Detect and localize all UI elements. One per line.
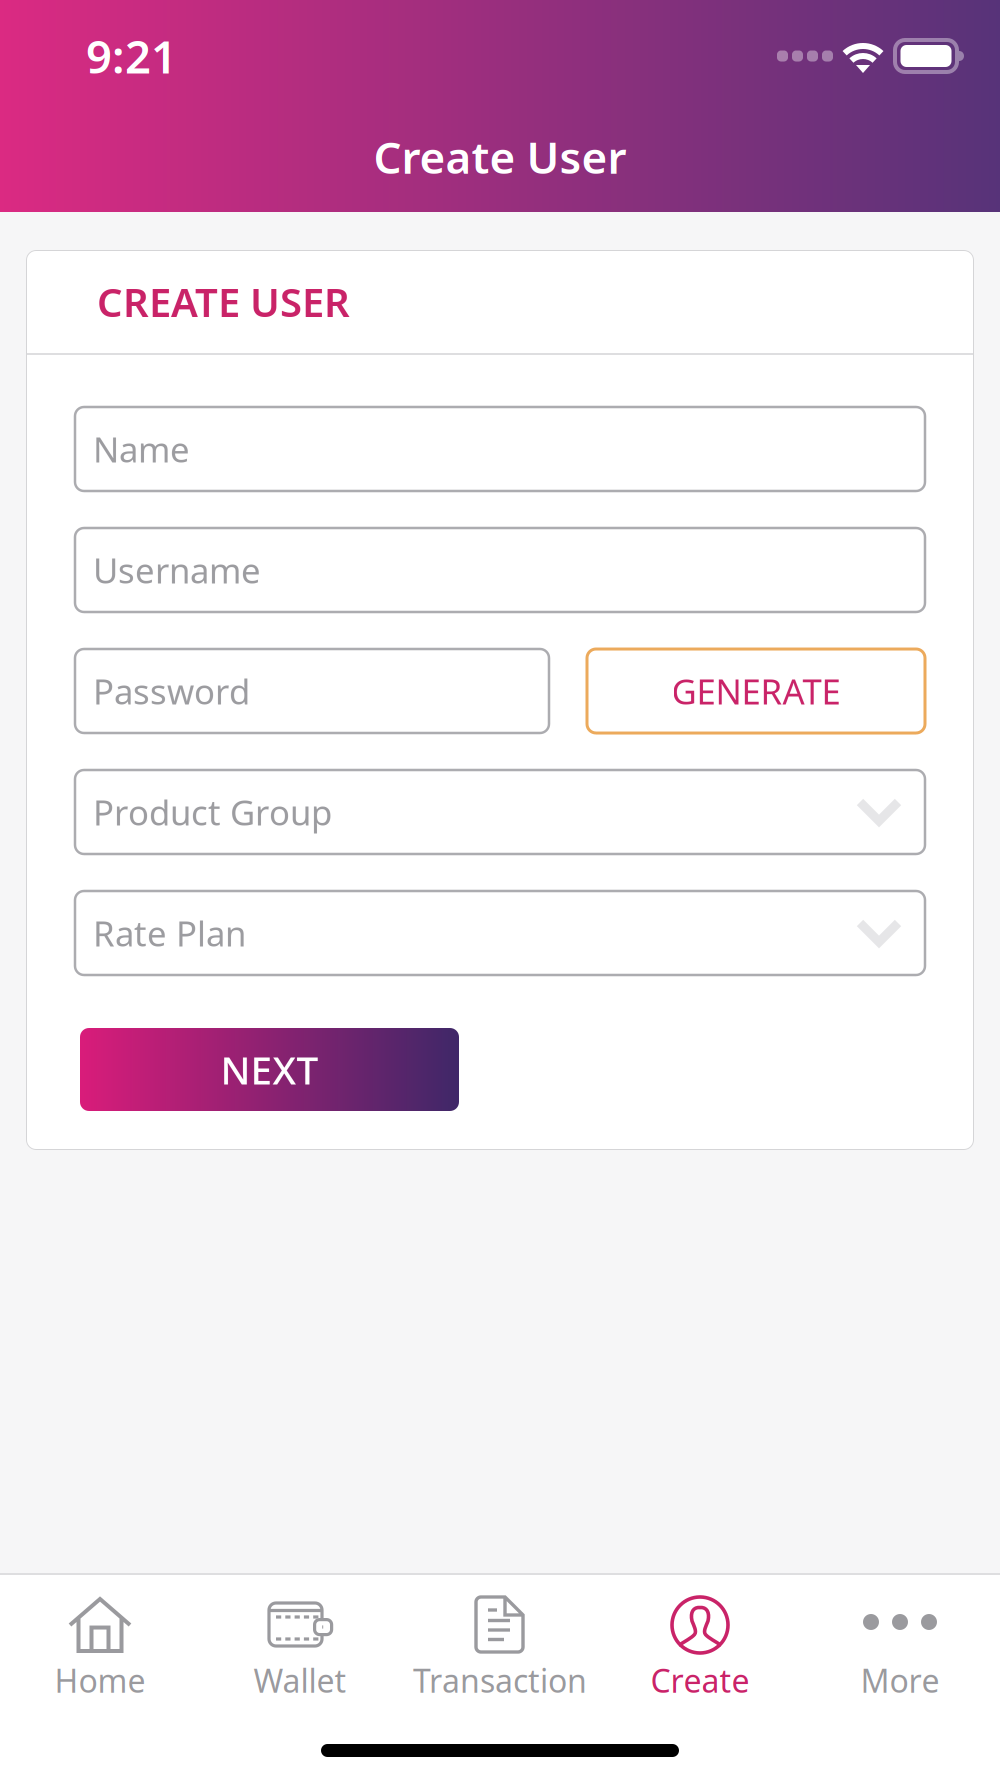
- button[interactable]: Name: [75, 407, 925, 491]
- button[interactable]: Rate Plan: [75, 891, 925, 975]
- staticText: Name: [93, 426, 190, 472]
- button[interactable]: Wallet: [200, 1596, 400, 1708]
- staticText: Transaction: [413, 1659, 587, 1701]
- staticText: Home: [54, 1659, 145, 1701]
- staticText: Username: [93, 547, 261, 593]
- button[interactable]: Password: [75, 649, 549, 733]
- button[interactable]: Product Group: [75, 770, 925, 854]
- staticText: CREATE USER: [97, 275, 350, 328]
- staticText: Rate Plan: [93, 910, 246, 956]
- staticText: 9:21: [86, 26, 177, 86]
- staticText: NEXT: [220, 1044, 318, 1095]
- staticText: Create: [650, 1659, 749, 1701]
- staticText: Product Group: [93, 789, 332, 835]
- button[interactable]: Transaction: [400, 1596, 600, 1708]
- button[interactable]: More: [800, 1596, 1000, 1708]
- button[interactable]: GENERATE: [587, 649, 925, 733]
- staticText: Wallet: [253, 1659, 346, 1701]
- staticText: GENERATE: [671, 668, 840, 714]
- button[interactable]: Username: [75, 528, 925, 612]
- button[interactable]: NEXT: [75, 1028, 459, 1111]
- staticText: More: [860, 1659, 939, 1701]
- button[interactable]: Create: [600, 1596, 800, 1708]
- button[interactable]: Home: [0, 1596, 200, 1708]
- staticText: Password: [93, 668, 250, 714]
- staticText: Create User: [373, 128, 626, 186]
